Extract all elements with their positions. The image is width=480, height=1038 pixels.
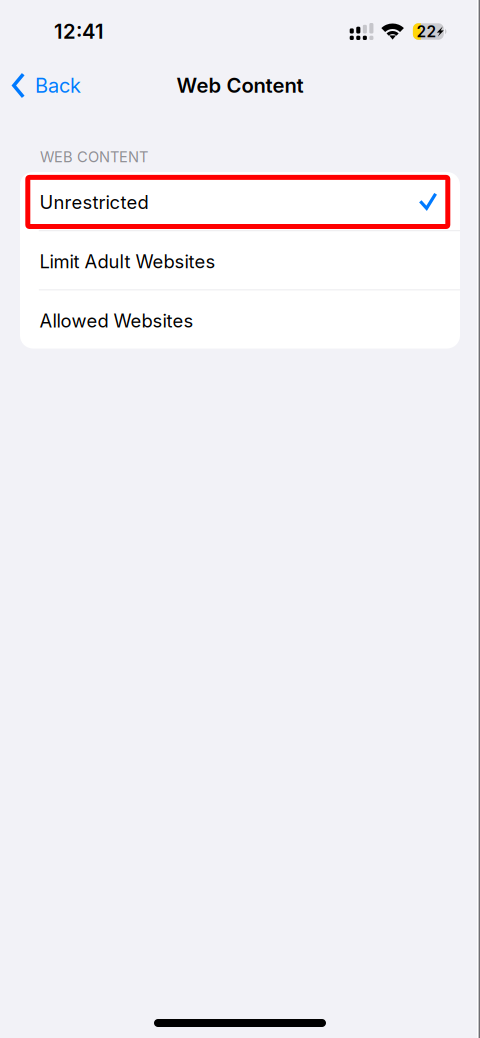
button[interactable]: Allowed Websites — [20, 290, 460, 348]
button[interactable]: Back — [0, 67, 89, 104]
staticText: Unrestricted — [40, 191, 149, 213]
staticText: 22 — [416, 22, 436, 41]
button[interactable]: Unrestricted — [20, 172, 460, 230]
button[interactable]: Limit Adult Websites — [20, 231, 460, 289]
staticText: 12:41 — [54, 19, 104, 44]
staticText: WEB CONTENT — [40, 148, 148, 166]
staticText: Web Content — [176, 73, 303, 98]
staticText: Allowed Websites — [40, 310, 194, 332]
staticText: Back — [35, 73, 81, 98]
staticText: Limit Adult Websites — [40, 250, 216, 273]
